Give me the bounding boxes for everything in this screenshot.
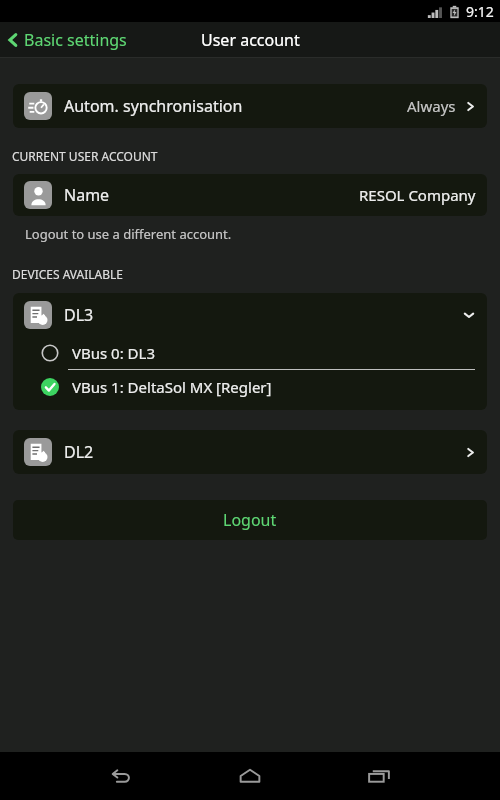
staticText: VBus 0: DL3 bbox=[72, 343, 155, 363]
staticText: VBus 1: DeltaSol MX [Regler] bbox=[72, 377, 272, 397]
staticText: Basic settings bbox=[24, 29, 127, 51]
button[interactable]: Logout bbox=[13, 500, 487, 540]
button[interactable]: VBus 1: DeltaSol MX [Regler] bbox=[13, 370, 487, 403]
staticText: DL3 bbox=[64, 304, 94, 326]
staticText: Logout bbox=[223, 509, 277, 531]
staticText: Always bbox=[407, 96, 456, 116]
button[interactable]: Autom. synchronisation bbox=[13, 84, 487, 128]
button[interactable]: Name bbox=[13, 174, 487, 216]
button[interactable]: DL2 bbox=[13, 430, 487, 474]
button[interactable]: DL3 bbox=[13, 293, 487, 337]
staticText: Autom. synchronisation bbox=[64, 95, 243, 117]
staticText: CURRENT USER ACCOUNT bbox=[12, 148, 158, 164]
button[interactable]: VBus 0: DL3 bbox=[13, 337, 487, 369]
staticText: User account bbox=[201, 29, 300, 51]
button[interactable]: Home bbox=[226, 752, 274, 800]
staticText: DL2 bbox=[64, 441, 94, 463]
button[interactable]: Back bbox=[97, 752, 145, 800]
staticText: Logout to use a different account. bbox=[25, 225, 232, 243]
staticText: 9:12 bbox=[466, 2, 494, 21]
staticText: DEVICES AVAILABLE bbox=[12, 266, 124, 282]
staticText: RESOL Company bbox=[359, 185, 476, 205]
staticText: Name bbox=[64, 184, 110, 206]
button[interactable]: Recents bbox=[355, 752, 403, 800]
button[interactable]: Basic settings bbox=[0, 22, 135, 58]
